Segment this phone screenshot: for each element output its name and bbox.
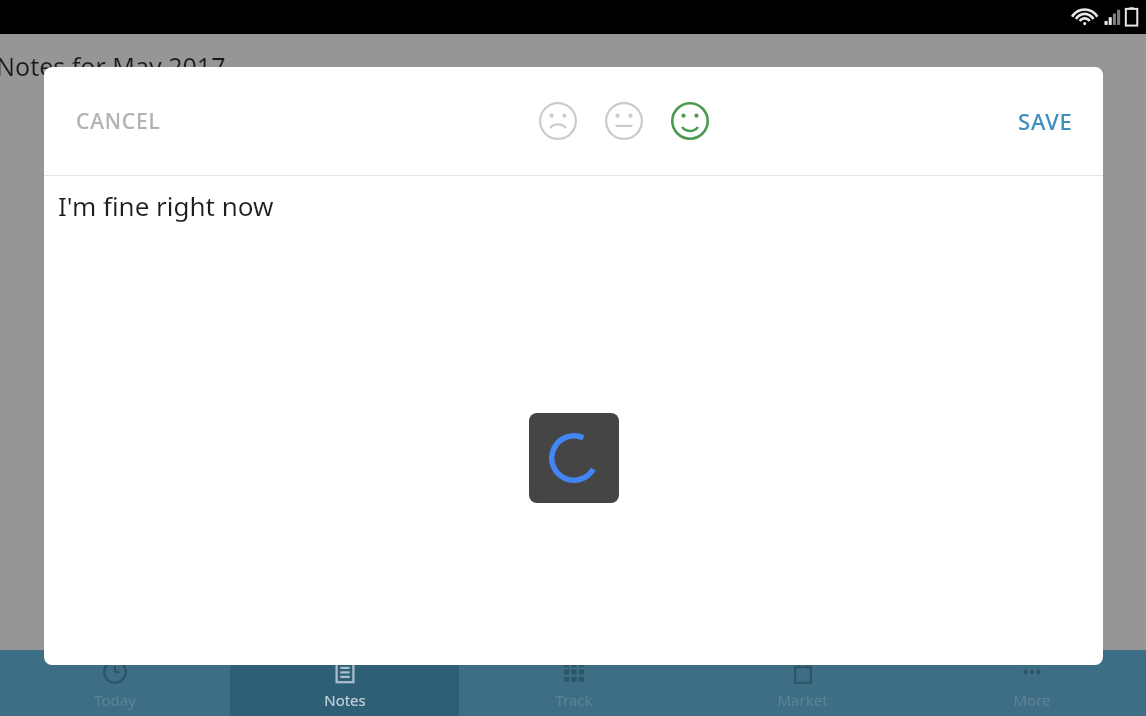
staticText: Notes — [324, 690, 366, 710]
staticText: I'm fine right now — [58, 188, 274, 223]
staticText: SAVE — [1018, 106, 1073, 136]
staticText: More — [1013, 690, 1051, 710]
button[interactable]: Neutral mood — [598, 95, 650, 147]
button[interactable]: Market — [688, 650, 917, 716]
button[interactable]: More — [917, 650, 1146, 716]
button[interactable]: Today — [0, 650, 230, 716]
button[interactable]: Notes — [230, 650, 459, 716]
button[interactable]: Track — [459, 650, 688, 716]
staticText: CANCEL — [76, 107, 161, 136]
button[interactable]: CANCEL — [56, 93, 181, 150]
staticText: Track — [555, 690, 593, 710]
button[interactable]: Sad mood — [532, 95, 584, 147]
button[interactable]: SAVE — [998, 92, 1093, 150]
staticText: Market — [777, 690, 828, 710]
button[interactable]: Happy mood — [664, 95, 716, 147]
staticText: Today — [94, 690, 136, 710]
staticText: Notes for May 2017 — [0, 49, 226, 83]
